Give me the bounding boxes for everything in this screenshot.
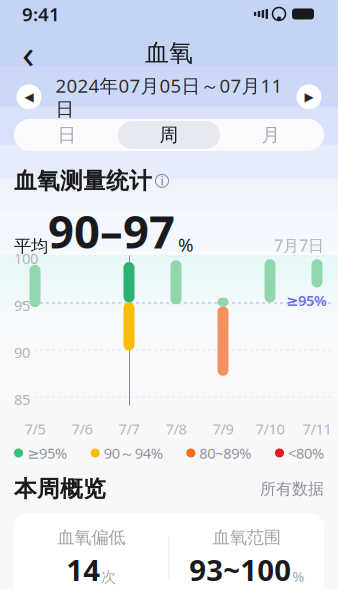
staticText: i	[160, 173, 163, 189]
staticText: 周	[159, 123, 178, 146]
staticText: 平均	[14, 236, 48, 257]
staticText: 血氧偏低	[57, 527, 125, 548]
staticText: 月	[261, 123, 280, 146]
staticText: 2024年07月05日～07月11日	[55, 73, 282, 121]
button[interactable]: 下一周	[292, 80, 326, 114]
staticText: 14	[66, 550, 100, 589]
staticText: %	[178, 232, 194, 257]
staticText: 血氧	[145, 38, 193, 68]
button[interactable]: 血氧测量统计说明	[0, 167, 169, 195]
staticText: 7/5	[24, 419, 45, 438]
staticText: <80%	[288, 443, 324, 463]
staticText: 90–97	[48, 201, 175, 261]
button[interactable]: 所有数据	[260, 479, 324, 499]
staticText: 7/10	[255, 419, 284, 438]
staticText: %	[292, 567, 304, 586]
staticText: 85	[14, 389, 30, 409]
button[interactable]: 月	[220, 120, 322, 150]
staticText: 93~100	[189, 550, 291, 589]
button[interactable]: 上一周	[12, 80, 46, 114]
staticText: 7/8	[165, 419, 186, 438]
staticText: ▶	[304, 90, 313, 104]
staticText: ≥95%	[27, 443, 67, 463]
staticText: 7/7	[118, 419, 139, 438]
staticText: 血氧测量统计	[14, 167, 152, 195]
staticText: 所有数据	[260, 479, 324, 499]
button[interactable]: 周	[118, 121, 220, 149]
staticText: 100	[14, 248, 38, 268]
button[interactable]: 返回	[8, 33, 48, 73]
staticText: 90～94%	[104, 443, 163, 463]
staticText: 80~89%	[199, 443, 251, 463]
staticText: 7/6	[71, 419, 92, 438]
staticText: ‹	[22, 26, 34, 79]
staticText: 9:41	[22, 1, 60, 26]
staticText: 次	[101, 568, 116, 586]
staticText: 7月7日	[274, 235, 324, 256]
staticText: ◀	[24, 90, 33, 104]
staticText: 本周概览	[14, 475, 106, 503]
staticText: 日	[57, 123, 76, 146]
staticText: 7/11	[302, 419, 331, 438]
button[interactable]: 日	[16, 120, 118, 150]
staticText: 95	[14, 295, 30, 315]
staticText: 7/9	[212, 419, 233, 438]
staticText: ≥95%	[286, 290, 327, 310]
staticText: 90	[14, 342, 30, 362]
staticText: 血氧范围	[213, 527, 281, 548]
